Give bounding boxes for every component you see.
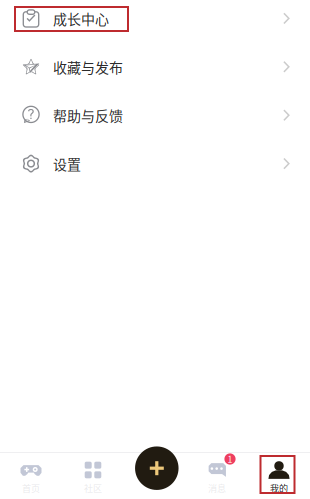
button[interactable]: 消息 — [186, 452, 248, 499]
button[interactable]: 收藏与发布 — [0, 43, 310, 91]
staticText: 帮助与反馈 — [53, 105, 123, 125]
button[interactable]: 帮助与反馈 — [0, 91, 310, 139]
button[interactable]: 首页 — [0, 452, 62, 499]
button[interactable]: 我的 — [248, 452, 310, 499]
staticText: 收藏与发布 — [53, 57, 123, 77]
staticText: 成长中心 — [53, 8, 109, 29]
staticText: 消息 — [208, 481, 226, 494]
button[interactable]: 社区 — [62, 452, 124, 499]
staticText: 1 — [227, 453, 232, 465]
staticText: 设置 — [53, 153, 81, 174]
button[interactable]: 设置 — [0, 139, 310, 188]
staticText: 社区 — [84, 481, 102, 494]
staticText: 我的 — [270, 481, 288, 494]
button[interactable]: Create — [135, 446, 179, 490]
button[interactable]: 成长中心 — [0, 0, 310, 43]
staticText: 首页 — [22, 481, 40, 494]
